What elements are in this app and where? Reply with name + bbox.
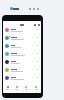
- button[interactable]: Chats: [3, 84, 12, 92]
- button[interactable]: [3, 26, 41, 34]
- other: Me: [35, 86, 37, 88]
- button[interactable]: Me: [31, 84, 41, 92]
- button[interactable]: [3, 66, 41, 74]
- button[interactable]: [3, 58, 41, 66]
- button[interactable]: [3, 74, 41, 82]
- other: Discover: [25, 86, 27, 88]
- button[interactable]: App logo: [10, 7, 13, 10]
- button[interactable]: [3, 42, 41, 50]
- button[interactable]: Discover: [21, 84, 31, 92]
- other: Contacts: [16, 86, 18, 88]
- other: Chats: [7, 86, 9, 88]
- button[interactable]: [3, 50, 41, 58]
- button[interactable]: Contacts: [12, 84, 21, 92]
- button[interactable]: [3, 34, 41, 42]
